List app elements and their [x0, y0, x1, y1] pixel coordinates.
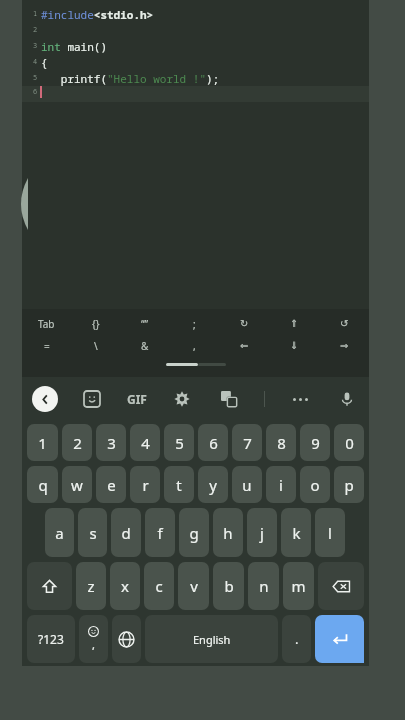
button[interactable]: GIF: [127, 391, 147, 407]
staticText: y: [209, 475, 217, 495]
button[interactable]: d: [111, 508, 141, 557]
button[interactable]: s: [78, 508, 107, 557]
staticText: x: [121, 576, 129, 596]
staticText: &: [141, 339, 149, 353]
button[interactable]: Tab: [22, 313, 71, 335]
button[interactable]: Backspace: [318, 562, 364, 610]
button[interactable]: 9: [300, 424, 330, 461]
staticText: 8: [277, 433, 286, 453]
staticText: 2: [73, 433, 82, 453]
button[interactable]: &: [120, 335, 169, 357]
button[interactable]: 8: [266, 424, 296, 461]
staticText: 0: [345, 433, 354, 453]
staticText: t: [176, 475, 182, 495]
button[interactable]: ?123: [27, 615, 75, 663]
staticText: 1: [33, 9, 38, 19]
button[interactable]: ;: [169, 313, 219, 335]
staticText: h: [223, 523, 233, 543]
button[interactable]: v: [178, 562, 209, 610]
button[interactable]: 6: [198, 424, 228, 461]
button[interactable]: ⇓: [269, 335, 319, 357]
button[interactable]: p: [334, 466, 364, 503]
button[interactable]: z: [76, 562, 106, 610]
button[interactable]: r: [130, 466, 160, 503]
button[interactable]: Settings: [170, 387, 194, 411]
button[interactable]: u: [232, 466, 262, 503]
button[interactable]: Back: [32, 386, 58, 412]
button[interactable]: ↺: [319, 313, 369, 335]
staticText: d: [121, 523, 131, 543]
button[interactable]: .: [282, 615, 311, 663]
staticText: ⇒: [340, 340, 349, 352]
staticText: English: [193, 632, 231, 647]
staticText: {}: [92, 317, 100, 331]
button[interactable]: 7: [232, 424, 262, 461]
staticText: 9: [311, 433, 320, 453]
staticText: 2: [33, 25, 38, 35]
button[interactable]: f: [145, 508, 175, 557]
button[interactable]: 5: [164, 424, 194, 461]
staticText: ?123: [38, 631, 64, 647]
button[interactable]: Voice input: [335, 387, 359, 411]
staticText: printf("Hello world !");: [41, 71, 220, 86]
button[interactable]: “”: [120, 313, 169, 335]
button[interactable]: Stickers: [80, 387, 104, 411]
button[interactable]: i: [266, 466, 296, 503]
button[interactable]: More options: [288, 387, 312, 411]
button[interactable]: ↻: [219, 313, 269, 335]
button[interactable]: l: [315, 508, 345, 557]
button[interactable]: k: [281, 508, 311, 557]
staticText: ⇓: [290, 340, 299, 352]
button[interactable]: ⇒: [319, 335, 369, 357]
staticText: 4: [33, 57, 38, 67]
staticText: 1: [38, 433, 47, 453]
button[interactable]: \: [71, 335, 120, 357]
button[interactable]: Change language: [112, 615, 141, 663]
button[interactable]: b: [213, 562, 244, 610]
button[interactable]: n: [248, 562, 279, 610]
button[interactable]: q: [27, 466, 58, 503]
button[interactable]: m: [283, 562, 314, 610]
staticText: v: [190, 576, 198, 596]
staticText: q: [38, 475, 48, 495]
staticText: o: [310, 475, 320, 495]
button[interactable]: 2: [62, 424, 92, 461]
staticText: i: [279, 475, 283, 495]
button[interactable]: w: [62, 466, 92, 503]
staticText: ;: [193, 317, 196, 331]
button[interactable]: e: [96, 466, 126, 503]
button[interactable]: 0: [334, 424, 364, 461]
staticText: r: [142, 475, 149, 495]
staticText: p: [344, 475, 354, 495]
button[interactable]: y: [198, 466, 228, 503]
button[interactable]: Shift: [27, 562, 72, 610]
button[interactable]: ,: [169, 335, 219, 357]
button[interactable]: h: [213, 508, 243, 557]
staticText: Tab: [38, 317, 55, 331]
button[interactable]: j: [247, 508, 277, 557]
button[interactable]: a: [45, 508, 74, 557]
button[interactable]: English: [145, 615, 278, 663]
staticText: \: [94, 339, 98, 353]
button[interactable]: o: [300, 466, 330, 503]
button[interactable]: Enter: [315, 615, 364, 663]
button[interactable]: 3: [96, 424, 126, 461]
button[interactable]: t: [164, 466, 194, 503]
button[interactable]: Emoji and comma: [79, 615, 108, 663]
button[interactable]: ⇑: [269, 313, 319, 335]
button[interactable]: 1: [27, 424, 58, 461]
button[interactable]: ⇐: [219, 335, 269, 357]
staticText: 6: [33, 87, 38, 97]
staticText: m: [291, 576, 306, 596]
button[interactable]: 4: [130, 424, 160, 461]
staticText: 6: [209, 433, 218, 453]
button[interactable]: g: [179, 508, 209, 557]
button[interactable]: x: [110, 562, 140, 610]
button[interactable]: Translate: [217, 387, 241, 411]
staticText: w: [71, 475, 83, 495]
staticText: ,: [92, 637, 95, 652]
button[interactable]: c: [144, 562, 174, 610]
staticText: {: [41, 55, 48, 70]
button[interactable]: {}: [71, 313, 120, 335]
button[interactable]: =: [22, 335, 71, 357]
